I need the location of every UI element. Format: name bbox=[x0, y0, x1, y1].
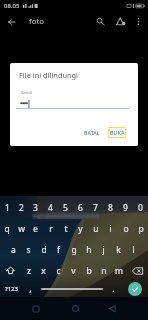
staticText: r bbox=[49, 223, 53, 235]
staticText: . bbox=[112, 283, 115, 295]
button[interactable]: b bbox=[81, 260, 96, 281]
button[interactable]: 7 bbox=[88, 197, 103, 218]
staticText: , bbox=[29, 283, 32, 295]
staticText: 6 bbox=[78, 202, 83, 214]
button[interactable]: u bbox=[88, 218, 103, 239]
button[interactable]: c bbox=[51, 260, 66, 281]
staticText: 2 bbox=[19, 202, 24, 214]
staticText: i bbox=[109, 223, 112, 235]
button[interactable]: h bbox=[81, 239, 96, 260]
button[interactable]: d bbox=[36, 239, 51, 260]
staticText: g bbox=[71, 244, 77, 256]
staticText: u bbox=[93, 223, 99, 235]
button[interactable]: x bbox=[36, 260, 51, 281]
staticText: o bbox=[123, 223, 129, 235]
button[interactable]: p bbox=[133, 218, 148, 239]
button[interactable]: ?123 bbox=[0, 281, 23, 297]
button[interactable]: Back bbox=[101, 297, 123, 320]
button[interactable]: j bbox=[96, 239, 111, 260]
staticText: ?123 bbox=[5, 285, 18, 293]
button[interactable]: v bbox=[66, 260, 81, 281]
button[interactable]: 0 bbox=[133, 197, 148, 218]
staticText: c bbox=[56, 265, 61, 277]
button[interactable]: Space bbox=[41, 288, 103, 290]
staticText: 3 bbox=[33, 202, 38, 214]
button[interactable]: Shift bbox=[0, 260, 21, 281]
staticText: q bbox=[4, 223, 10, 235]
staticText: k bbox=[116, 244, 121, 256]
button[interactable]: , bbox=[23, 281, 38, 297]
button[interactable]: 4 bbox=[43, 197, 58, 218]
button[interactable]: 6 bbox=[73, 197, 88, 218]
staticText: j bbox=[102, 244, 105, 256]
button[interactable]: . bbox=[106, 281, 121, 297]
button[interactable]: 3 bbox=[28, 197, 43, 218]
button[interactable]: Recents bbox=[25, 297, 47, 320]
button[interactable]: 5 bbox=[58, 197, 73, 218]
button[interactable]: BUKA bbox=[108, 127, 126, 138]
button[interactable]: e bbox=[28, 218, 43, 239]
staticText: 7 bbox=[93, 202, 98, 214]
button[interactable]: f bbox=[51, 239, 66, 260]
staticText: b bbox=[86, 265, 92, 277]
button[interactable]: BATAL bbox=[81, 127, 103, 138]
staticText: BATAL bbox=[84, 129, 100, 136]
button[interactable]: k bbox=[111, 239, 126, 260]
staticText: 5 bbox=[63, 202, 68, 214]
staticText: z bbox=[27, 265, 31, 277]
button[interactable]: More options bbox=[129, 12, 148, 31]
button[interactable]: s bbox=[21, 239, 36, 260]
staticText: 1 bbox=[5, 202, 10, 214]
button[interactable]: t bbox=[58, 218, 73, 239]
button[interactable]: r bbox=[43, 218, 58, 239]
button[interactable]: q bbox=[0, 218, 14, 239]
button[interactable]: Search bbox=[91, 12, 110, 31]
staticText: y bbox=[78, 223, 83, 235]
staticText: 0 bbox=[138, 202, 143, 214]
button[interactable]: w bbox=[14, 218, 28, 239]
staticText: 9 bbox=[123, 202, 128, 214]
button[interactable]: 9 bbox=[118, 197, 133, 218]
button[interactable]: 1 bbox=[0, 197, 14, 218]
staticText: p bbox=[138, 223, 144, 235]
staticText: f bbox=[57, 244, 60, 256]
staticText: File ini dilindungi bbox=[19, 70, 79, 80]
staticText: 8 bbox=[108, 202, 113, 214]
button[interactable]: z bbox=[21, 260, 36, 281]
button[interactable]: y bbox=[73, 218, 88, 239]
staticText: n bbox=[101, 265, 107, 277]
staticText: foto bbox=[29, 16, 44, 27]
button[interactable]: g bbox=[66, 239, 81, 260]
button[interactable]: 2 bbox=[14, 197, 28, 218]
staticText: v bbox=[71, 265, 76, 277]
staticText: t bbox=[64, 223, 68, 235]
button[interactable]: Enter bbox=[128, 282, 142, 296]
staticText: w bbox=[18, 223, 25, 235]
staticText: Sandi bbox=[21, 90, 32, 96]
staticText: a bbox=[11, 244, 16, 256]
staticText: l bbox=[132, 244, 135, 256]
staticText: 08.05 bbox=[4, 2, 20, 10]
staticText: s bbox=[26, 244, 31, 256]
staticText: BUKA bbox=[110, 129, 125, 136]
staticText: e bbox=[33, 223, 38, 235]
button[interactable]: a bbox=[6, 239, 21, 260]
button[interactable]: o bbox=[118, 218, 133, 239]
button[interactable]: Back bbox=[2, 12, 21, 31]
staticText: h bbox=[86, 244, 92, 256]
button[interactable]: n bbox=[96, 260, 111, 281]
staticText: 4 bbox=[48, 202, 53, 214]
button[interactable]: Lens bbox=[111, 12, 130, 31]
button[interactable]: Backspace bbox=[126, 260, 148, 281]
button[interactable]: i bbox=[103, 218, 118, 239]
button[interactable]: Home bbox=[64, 297, 86, 320]
button[interactable]: 8 bbox=[103, 197, 118, 218]
staticText: d bbox=[41, 244, 47, 256]
button[interactable]: l bbox=[126, 239, 141, 260]
staticText: m bbox=[115, 265, 123, 277]
button[interactable]: m bbox=[111, 260, 126, 281]
staticText: x bbox=[41, 265, 46, 277]
